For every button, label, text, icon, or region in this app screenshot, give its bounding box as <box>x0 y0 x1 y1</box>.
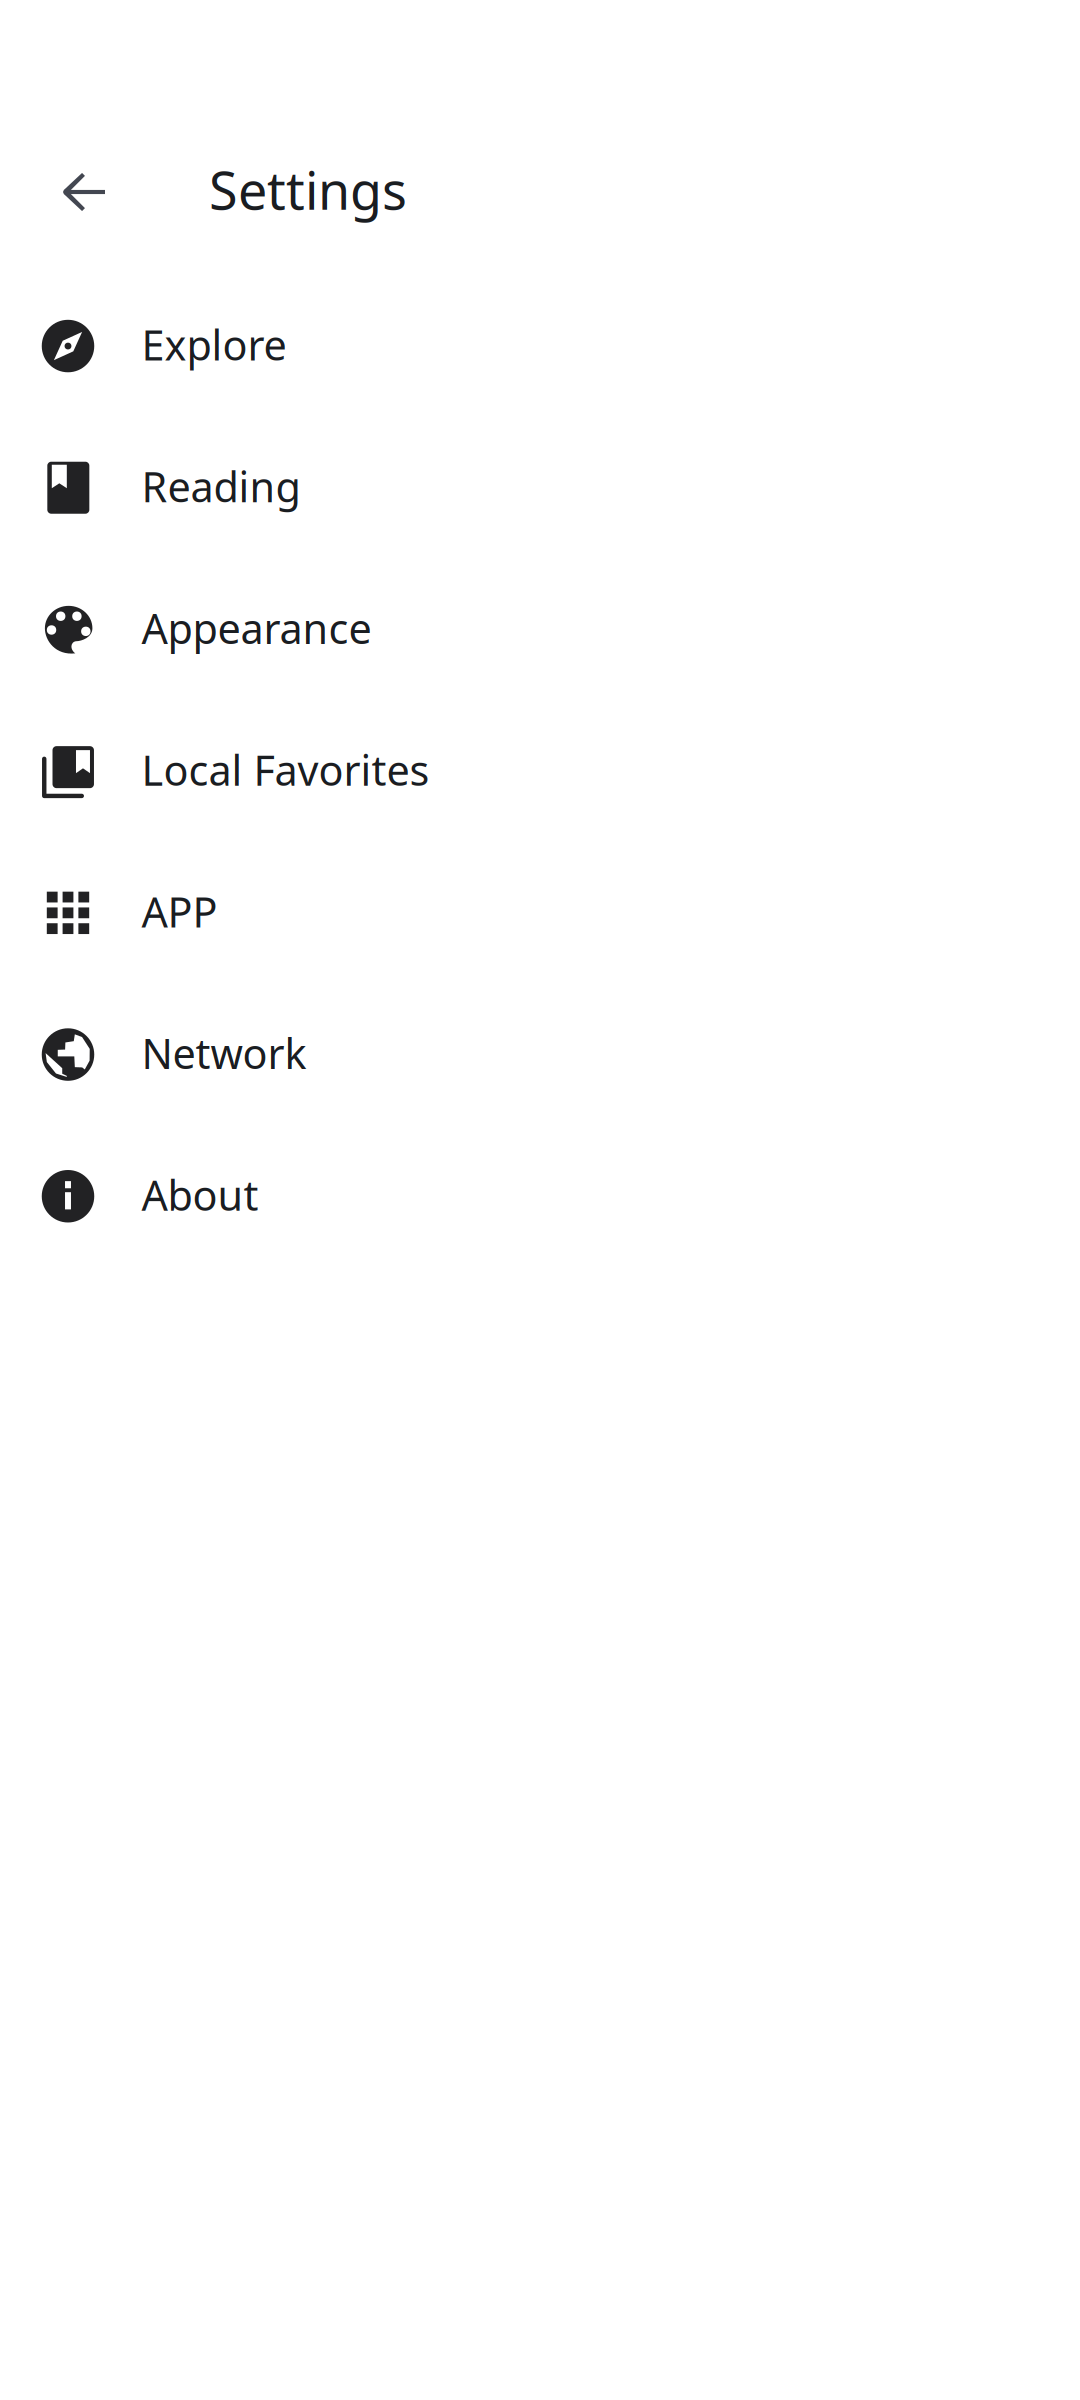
staticText: Local Favorites <box>141 742 429 797</box>
button[interactable]: Explore <box>0 275 1080 417</box>
button[interactable]: Appearance <box>0 559 1080 700</box>
button[interactable]: Network <box>0 984 1080 1125</box>
staticText: About <box>141 1167 258 1222</box>
staticText: Network <box>141 1026 306 1080</box>
staticText: Settings <box>209 155 407 224</box>
button[interactable]: Local Favorites <box>0 700 1080 842</box>
button[interactable]: About <box>0 1125 1080 1267</box>
button[interactable]: Back <box>28 136 140 248</box>
staticText: Explore <box>141 317 286 372</box>
staticText: APP <box>141 884 217 939</box>
staticText: Appearance <box>141 600 371 655</box>
button[interactable]: Reading <box>0 417 1080 559</box>
button[interactable]: APP <box>0 842 1080 984</box>
staticText: Reading <box>141 459 300 514</box>
